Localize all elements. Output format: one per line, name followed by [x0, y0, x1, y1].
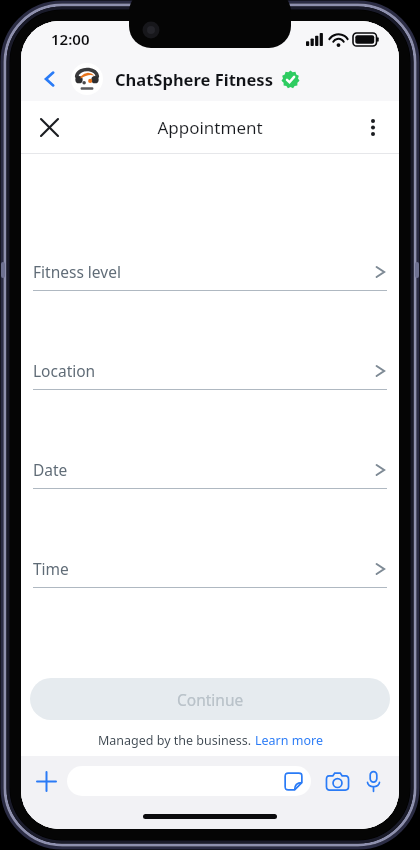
staticText: ChatSphere Fitness: [115, 68, 273, 90]
staticText: 12:00: [51, 29, 90, 49]
staticText: Appointment: [157, 116, 263, 139]
button[interactable]: Add attachment: [29, 764, 63, 798]
button[interactable]: Learn more: [255, 732, 323, 749]
button[interactable]: Date: [21, 390, 399, 489]
button[interactable]: Sticker: [67, 766, 311, 796]
button[interactable]: Fitness level: [21, 192, 399, 291]
staticText: Time: [33, 558, 69, 579]
staticText: Learn more: [255, 732, 323, 749]
staticText: Managed by the business.: [98, 732, 255, 749]
button[interactable]: Time: [21, 489, 399, 588]
staticText: Location: [33, 360, 96, 381]
button[interactable]: Camera: [319, 763, 355, 799]
button[interactable]: Close: [27, 105, 71, 149]
staticText: Fitness level: [33, 261, 121, 282]
button[interactable]: Voice message: [355, 763, 391, 799]
button[interactable]: Location: [21, 291, 399, 390]
other: Sticker: [282, 770, 304, 792]
button[interactable]: Back: [31, 60, 69, 98]
button[interactable]: More options: [351, 105, 395, 149]
staticText: Date: [33, 459, 68, 480]
button[interactable]: Continue: [30, 678, 390, 720]
staticText: Continue: [177, 689, 244, 710]
